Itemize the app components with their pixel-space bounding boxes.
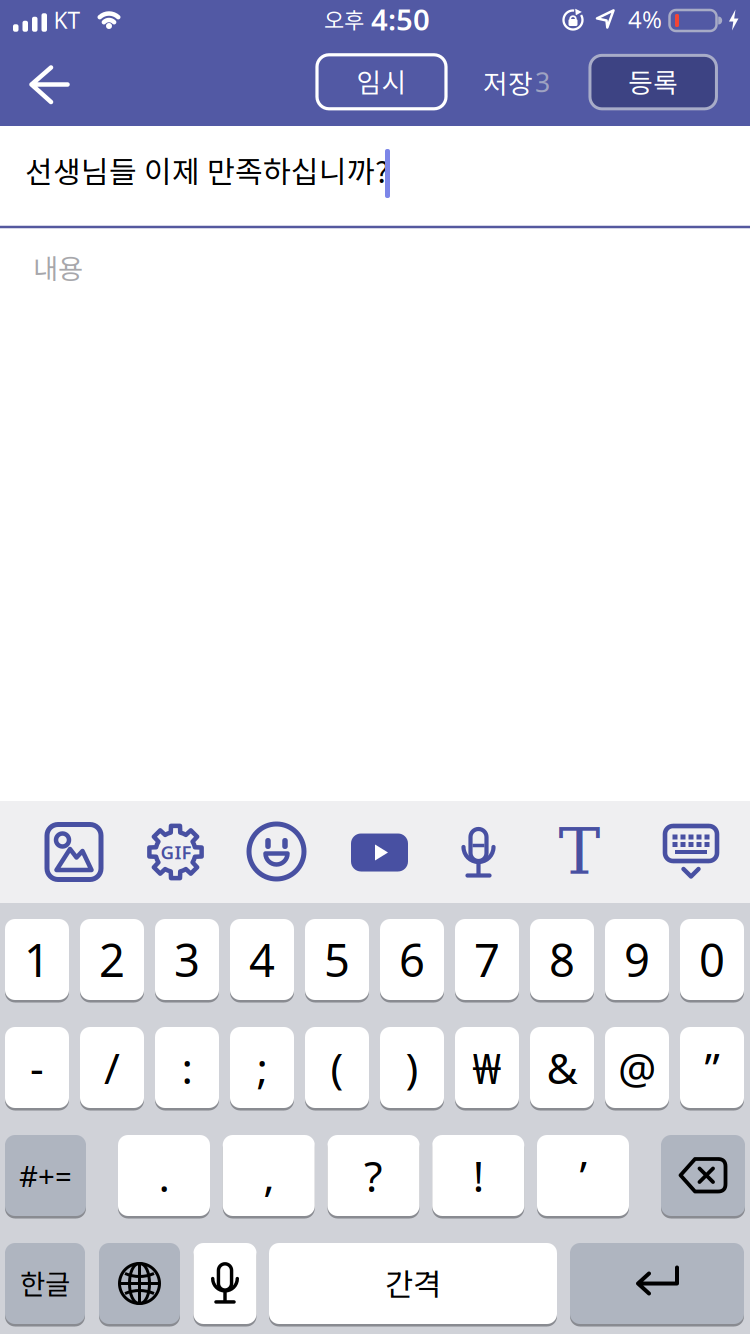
button[interactable]: ) xyxy=(380,1026,444,1109)
button[interactable]: 임시 xyxy=(317,55,446,109)
staticText: 0 xyxy=(699,929,725,990)
staticText: . xyxy=(158,1147,169,1204)
staticText: ₩ xyxy=(472,1039,501,1096)
staticText: 9 xyxy=(624,929,650,990)
staticText: 7 xyxy=(474,929,500,990)
button[interactable]: 7 xyxy=(455,918,519,1001)
staticText: ) xyxy=(405,1039,418,1096)
staticText: GIF xyxy=(160,840,191,864)
staticText: @ xyxy=(618,1039,656,1096)
button[interactable]: Next keyboard xyxy=(99,1242,180,1325)
staticText: ; xyxy=(256,1039,267,1096)
button[interactable]: 4 xyxy=(230,918,294,1001)
staticText: 3 xyxy=(174,929,200,990)
button[interactable]: Back xyxy=(20,59,80,111)
staticText: 임시 xyxy=(356,61,406,100)
staticText: 1 xyxy=(24,929,50,990)
staticText: 3 xyxy=(535,64,550,100)
staticText: 간격 xyxy=(385,1260,441,1305)
staticText: 한글 xyxy=(20,1263,70,1302)
button[interactable]: ” xyxy=(680,1026,744,1109)
button[interactable]: - xyxy=(5,1026,69,1109)
staticText: 6 xyxy=(399,929,425,990)
button[interactable]: Text style xyxy=(554,822,604,882)
staticText: ” xyxy=(704,1039,719,1096)
staticText: 4% xyxy=(628,3,662,35)
button[interactable]: 1 xyxy=(5,918,69,1001)
button[interactable]: : xyxy=(155,1026,219,1109)
staticText: 4 xyxy=(249,929,275,990)
button[interactable]: 3 xyxy=(155,918,219,1001)
staticText: ( xyxy=(330,1039,343,1096)
button[interactable]: Record voice xyxy=(463,828,493,878)
button[interactable]: Dictate xyxy=(193,1242,256,1325)
staticText: 5 xyxy=(324,929,350,990)
staticText: 저장 xyxy=(483,63,533,101)
button[interactable]: ( xyxy=(305,1026,369,1109)
button[interactable]: , xyxy=(223,1134,315,1217)
staticText: #+= xyxy=(19,1156,72,1195)
button[interactable]: 등록 xyxy=(590,55,716,109)
staticText: 오후 xyxy=(324,3,364,35)
button[interactable]: @ xyxy=(605,1026,669,1109)
staticText: 8 xyxy=(549,929,575,990)
staticText: 내용 xyxy=(33,247,83,287)
button[interactable]: Add video xyxy=(351,833,408,871)
button[interactable]: ! xyxy=(432,1134,524,1217)
button[interactable]: ; xyxy=(230,1026,294,1109)
button[interactable]: . xyxy=(118,1134,210,1217)
button[interactable]: 한글 xyxy=(5,1242,85,1325)
button[interactable]: 0 xyxy=(680,918,744,1001)
staticText: 4:50 xyxy=(371,0,430,38)
button[interactable]: Add GIF xyxy=(148,824,203,879)
staticText: T xyxy=(558,815,600,888)
button[interactable]: 2 xyxy=(80,918,144,1001)
staticText: 선생님들 이제 만족하십니까? xyxy=(25,148,389,192)
button[interactable]: 5 xyxy=(305,918,369,1001)
button[interactable]: 8 xyxy=(530,918,594,1001)
button[interactable]: & xyxy=(530,1026,594,1109)
staticText: - xyxy=(30,1039,44,1096)
staticText: , xyxy=(263,1147,274,1204)
button[interactable]: Add emoticon xyxy=(249,824,304,879)
staticText: & xyxy=(546,1039,577,1096)
button[interactable]: 6 xyxy=(380,918,444,1001)
button[interactable]: ₩ xyxy=(455,1026,519,1109)
staticText: KT xyxy=(53,5,80,35)
button[interactable]: 9 xyxy=(605,918,669,1001)
button[interactable]: Delete xyxy=(661,1134,745,1217)
button[interactable]: ? xyxy=(327,1134,419,1217)
button[interactable]: #+= xyxy=(5,1134,86,1217)
staticText: ? xyxy=(364,1147,383,1204)
button[interactable]: 간격 xyxy=(269,1242,557,1325)
staticText: ’ xyxy=(579,1147,586,1204)
staticText: : xyxy=(181,1039,192,1096)
button[interactable]: ’ xyxy=(537,1134,629,1217)
button[interactable]: / xyxy=(80,1026,144,1109)
staticText: / xyxy=(104,1039,120,1096)
staticText: 등록 xyxy=(628,62,678,100)
staticText: ! xyxy=(473,1147,484,1204)
staticText: 2 xyxy=(99,929,125,990)
button[interactable]: Add photo xyxy=(47,824,101,879)
button[interactable]: 저장 xyxy=(483,63,550,101)
button[interactable]: Dismiss keyboard xyxy=(665,826,717,878)
button[interactable]: Return xyxy=(570,1242,744,1325)
